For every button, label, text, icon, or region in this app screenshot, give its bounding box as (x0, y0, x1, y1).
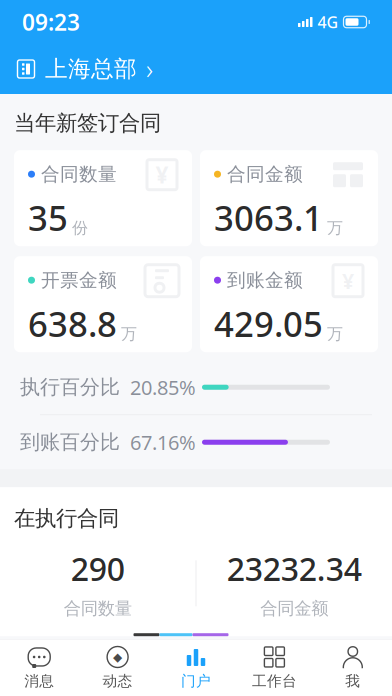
staticText: 万 (121, 324, 137, 344)
staticText: 到账金额 (227, 269, 303, 292)
staticText: 我 (345, 672, 360, 690)
staticText: 429.05 (214, 301, 323, 347)
staticText: 23232.34 (227, 547, 362, 590)
staticText: 消息 (24, 672, 54, 690)
button[interactable]: 消息 (0, 640, 78, 696)
staticText: 4G (317, 11, 338, 33)
staticText: 到账百分比 (20, 430, 120, 454)
staticText: 09:23 (22, 7, 80, 37)
staticText: 上海总部 (45, 55, 137, 83)
button[interactable]: 我 (314, 640, 392, 696)
staticText: 合同数量 (41, 163, 117, 186)
button[interactable]: ◆ (78, 640, 157, 696)
staticText: 合同金额 (260, 598, 328, 619)
staticText: 3063.1 (214, 195, 323, 241)
staticText: 638.8 (28, 301, 117, 347)
staticText: › (146, 51, 153, 87)
staticText: 合同数量 (64, 598, 132, 619)
staticText: 动态 (103, 672, 133, 690)
staticText: 门户 (181, 672, 211, 690)
staticText: 67.16% (130, 429, 196, 455)
staticText: 290 (71, 547, 125, 590)
staticText: 万 (327, 218, 343, 238)
staticText: 在执行合同 (14, 505, 119, 531)
staticText: 万 (327, 324, 343, 344)
staticText: 合同金额 (227, 163, 303, 186)
staticText: 执行百分比 (20, 375, 120, 399)
staticText: 当年新签订合同 (14, 110, 161, 136)
staticText: 份 (72, 218, 88, 238)
staticText: 开票金额 (41, 269, 117, 292)
staticText: 工作台 (252, 672, 297, 690)
staticText: ◆ (113, 650, 122, 664)
staticText: ¥ (155, 160, 168, 190)
staticText: 20.85% (130, 374, 196, 400)
button[interactable]: 工作台 (235, 640, 314, 696)
staticText: ¥ (342, 267, 354, 295)
button[interactable]: 门户 (157, 640, 235, 696)
button[interactable]: 上海总部 (0, 44, 392, 94)
staticText: 35 (28, 195, 68, 241)
